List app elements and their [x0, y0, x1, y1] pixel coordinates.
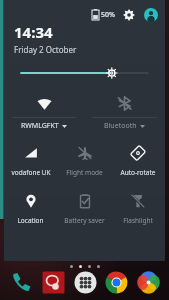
button[interactable]: RWMLGFKT [4, 86, 84, 136]
staticText: RWMLGFKT [21, 121, 59, 131]
staticText: Friday 2 October [14, 44, 77, 55]
button[interactable]: vodafone UK [4, 136, 57, 184]
button[interactable]: Settings [122, 8, 136, 22]
staticText: Flight mode [66, 168, 103, 177]
button[interactable]: Messages [38, 267, 68, 297]
staticText: Location [17, 216, 44, 225]
button[interactable]: Brightness [4, 62, 165, 84]
button[interactable]: Photos [133, 267, 163, 297]
staticText: Battery saver [64, 216, 105, 225]
button[interactable]: Flashlight [111, 184, 165, 232]
button[interactable]: Battery saver [57, 184, 111, 232]
button[interactable]: Flight mode [57, 136, 111, 184]
button[interactable]: Apps [70, 267, 100, 297]
staticText: 50% [101, 10, 115, 20]
button[interactable]: 14:34 [14, 22, 77, 55]
button[interactable]: Chrome [101, 267, 131, 297]
button[interactable]: Auto-rotate [111, 136, 165, 184]
button[interactable]: User account [143, 7, 158, 22]
staticText: Auto-rotate [120, 168, 156, 177]
staticText: Bluetooth [104, 121, 137, 131]
staticText: vodafone UK [11, 168, 51, 177]
staticText: 14:34 [14, 22, 53, 42]
button[interactable]: Phone [6, 267, 36, 297]
button[interactable]: Location [4, 184, 57, 232]
staticText: Flashlight [123, 216, 153, 225]
button[interactable]: Bluetooth [84, 86, 165, 136]
